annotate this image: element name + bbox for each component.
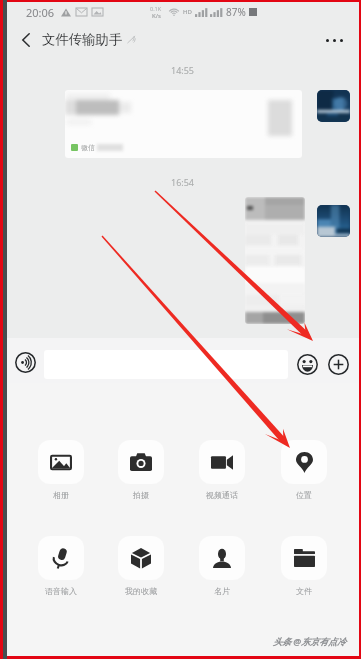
staticText: 名片 [214, 586, 230, 596]
button[interactable] [245, 197, 305, 324]
button[interactable]: 我的收藏 [118, 536, 164, 596]
staticText: 相册 [53, 490, 69, 500]
staticText: 头条 @东京有点冷 [273, 635, 347, 647]
staticText: 20:06 [26, 5, 55, 20]
button[interactable] [44, 350, 288, 379]
button[interactable]: 拍摄 [118, 440, 164, 500]
button[interactable]: More functions [324, 350, 352, 378]
staticText: 拍摄 [133, 490, 149, 500]
staticText: 微信 [81, 143, 95, 152]
button[interactable]: Avatar [317, 90, 350, 122]
staticText: 16:54 [171, 176, 195, 188]
button[interactable]: 微信 [65, 90, 302, 158]
staticText: 我的收藏 [125, 586, 157, 596]
button[interactable]: 语音输入 [38, 536, 84, 596]
button[interactable]: 视频通话 [199, 440, 245, 500]
button[interactable]: Emoji [293, 350, 321, 378]
staticText: 视频通话 [206, 490, 238, 500]
button[interactable]: Back [13, 27, 39, 53]
staticText: 文件传输助手 [42, 31, 123, 48]
button[interactable]: 位置 [281, 440, 327, 500]
button[interactable]: More options [319, 25, 349, 55]
button[interactable]: 名片 [199, 536, 245, 596]
staticText: 0.1K [150, 5, 162, 12]
staticText: 14:55 [171, 64, 195, 76]
button[interactable]: 文件 [281, 536, 327, 596]
staticText: 文件 [296, 586, 312, 596]
button[interactable]: Voice input [11, 348, 39, 376]
staticText: 87% [226, 5, 246, 19]
staticText: K/s [152, 12, 161, 20]
button[interactable]: 相册 [38, 440, 84, 500]
button[interactable]: Avatar [317, 205, 350, 237]
staticText: 语音输入 [45, 586, 77, 596]
staticText: 位置 [296, 490, 312, 500]
staticText: HD [183, 8, 192, 16]
